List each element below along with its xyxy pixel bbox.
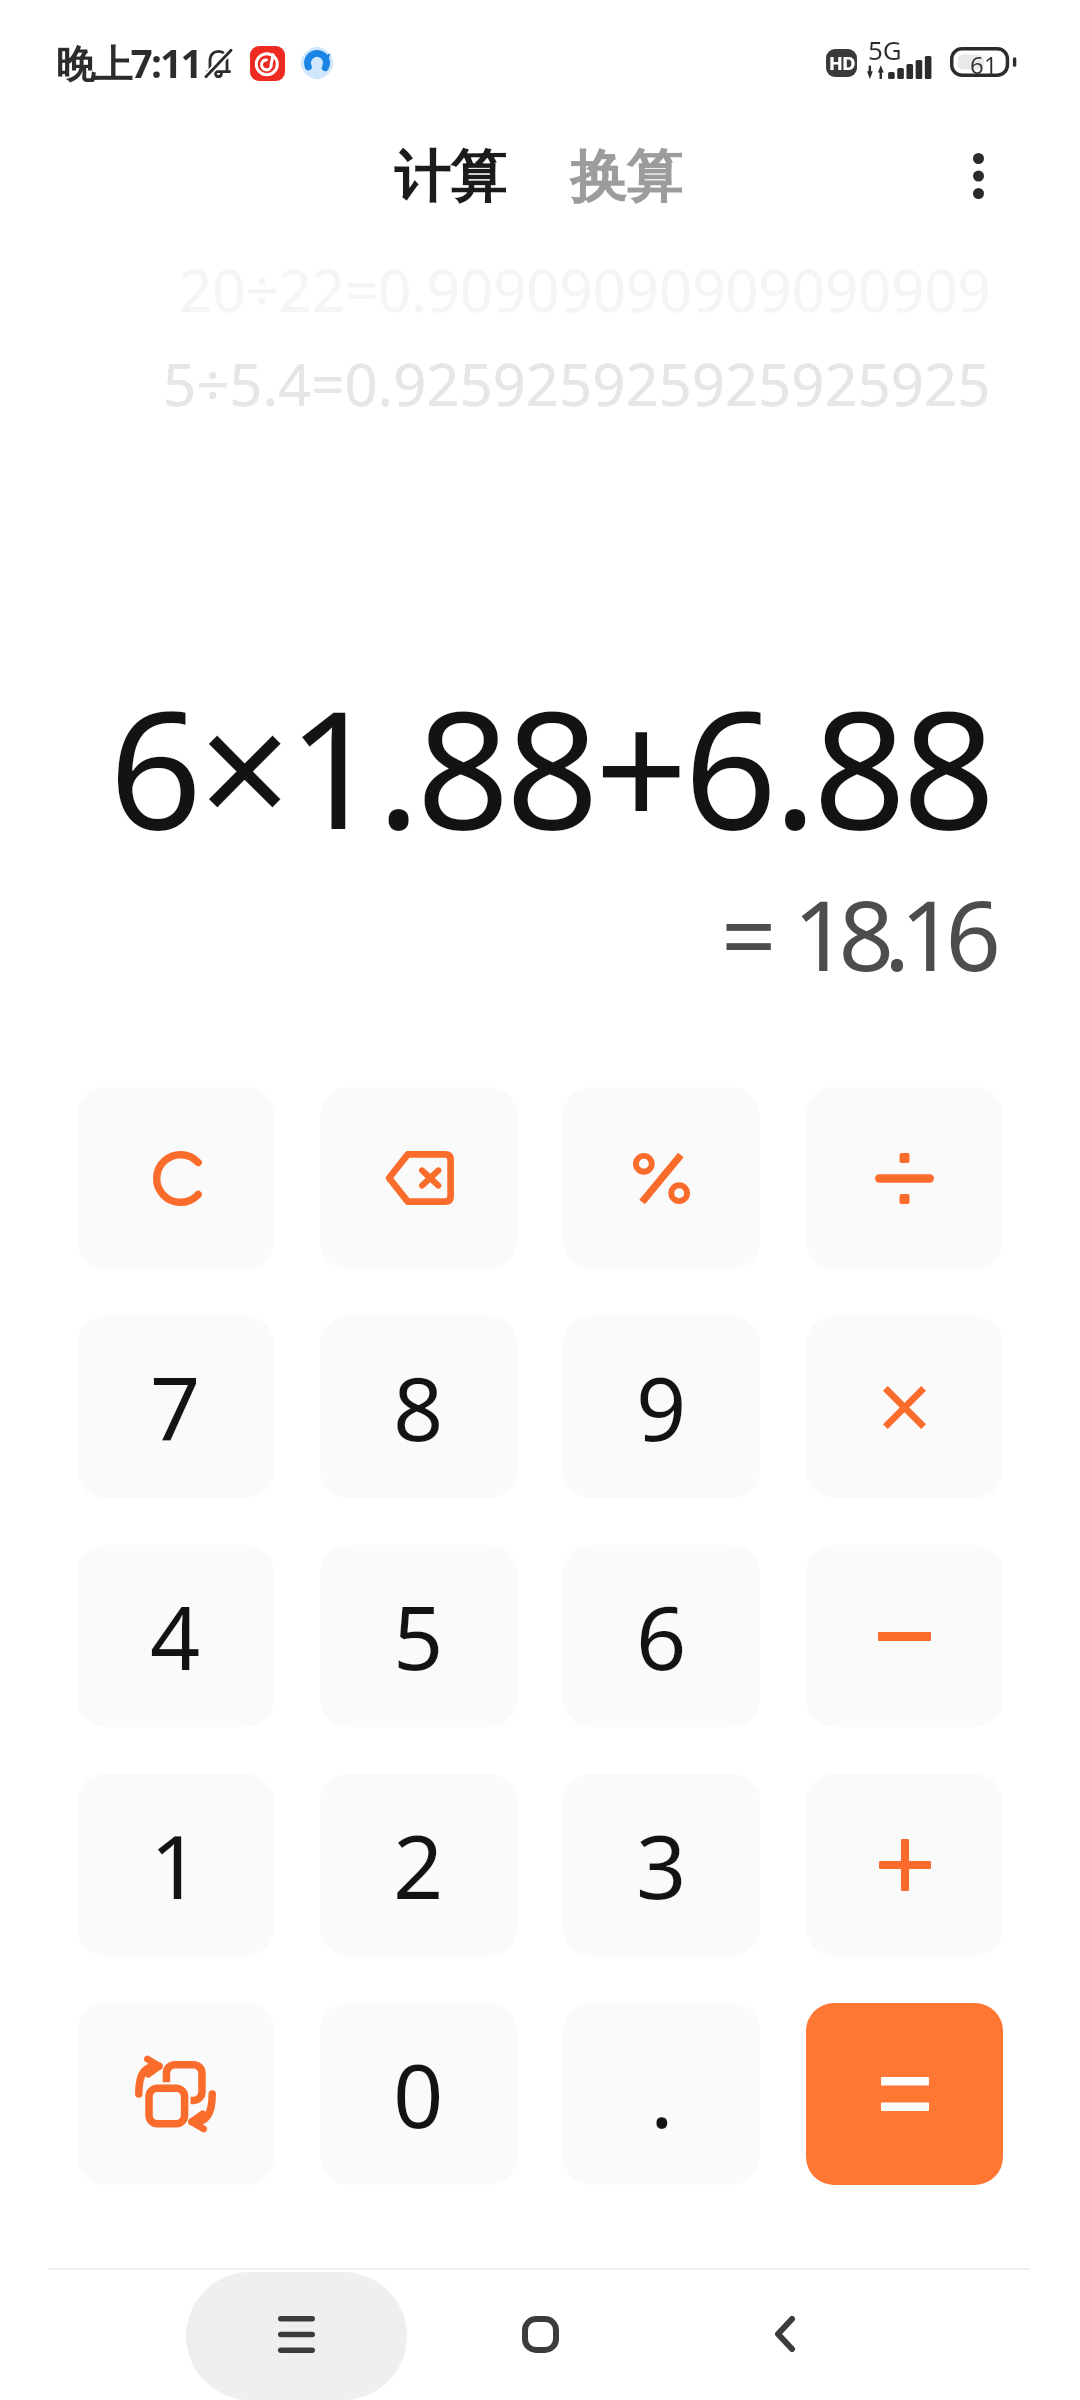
button[interactable]: Recent apps xyxy=(186,2272,407,2400)
staticText: 0 xyxy=(393,2034,444,2154)
staticText: 6 xyxy=(636,1576,687,1696)
staticText: = xyxy=(721,867,777,999)
staticText: 3 xyxy=(636,1805,687,1925)
staticText: 8 xyxy=(393,1347,444,1467)
staticText: 6×1.88+6.88 xyxy=(109,655,992,877)
button[interactable]: 5 xyxy=(320,1545,517,1727)
button[interactable]: Divide xyxy=(806,1087,1003,1269)
staticText: 晚上7:11 xyxy=(56,36,202,89)
button[interactable]: Unit converter xyxy=(77,2003,274,2185)
staticText: 18.16 xyxy=(793,867,991,999)
staticText: HD xyxy=(829,51,855,76)
button[interactable]: 计算 xyxy=(380,132,520,223)
button[interactable]: More options xyxy=(928,126,1028,226)
button[interactable]: Plus xyxy=(806,1774,1003,1956)
button[interactable]: Back xyxy=(723,2274,847,2394)
button[interactable]: 2 xyxy=(320,1774,517,1956)
staticText: 5G xyxy=(868,32,902,67)
button[interactable]: . xyxy=(563,2003,760,2185)
button[interactable]: 7 xyxy=(77,1316,274,1498)
button[interactable]: Clear xyxy=(77,1087,274,1269)
staticText: 5÷5.4=0.925925925925925925 xyxy=(163,344,991,423)
button[interactable]: Equals xyxy=(806,2003,1003,2185)
staticText: 计算 xyxy=(394,142,506,213)
staticText: 4 xyxy=(150,1576,201,1696)
staticText: 换算 xyxy=(570,142,682,213)
button[interactable]: Multiply xyxy=(806,1316,1003,1498)
staticText: 9 xyxy=(636,1347,687,1467)
button[interactable]: 4 xyxy=(77,1545,274,1727)
button[interactable]: Home xyxy=(470,2274,610,2394)
button[interactable]: 8 xyxy=(320,1316,517,1498)
button[interactable]: Percent xyxy=(563,1087,760,1269)
staticText: 5 xyxy=(393,1576,444,1696)
staticText: 20÷22=0.90909090909090909 xyxy=(179,250,991,329)
staticText: 7 xyxy=(150,1347,201,1467)
button[interactable]: 0 xyxy=(320,2003,517,2185)
button[interactable]: 换算 xyxy=(556,132,696,223)
staticText: 61 xyxy=(970,48,998,78)
button[interactable]: 1 xyxy=(77,1774,274,1956)
button[interactable]: 6 xyxy=(563,1545,760,1727)
button[interactable]: Minus xyxy=(806,1545,1003,1727)
button[interactable]: 3 xyxy=(563,1774,760,1956)
staticText: 1 xyxy=(150,1805,201,1925)
staticText: 2 xyxy=(393,1805,444,1925)
button[interactable]: Delete xyxy=(320,1087,517,1269)
staticText: . xyxy=(650,2034,674,2154)
button[interactable]: 9 xyxy=(563,1316,760,1498)
